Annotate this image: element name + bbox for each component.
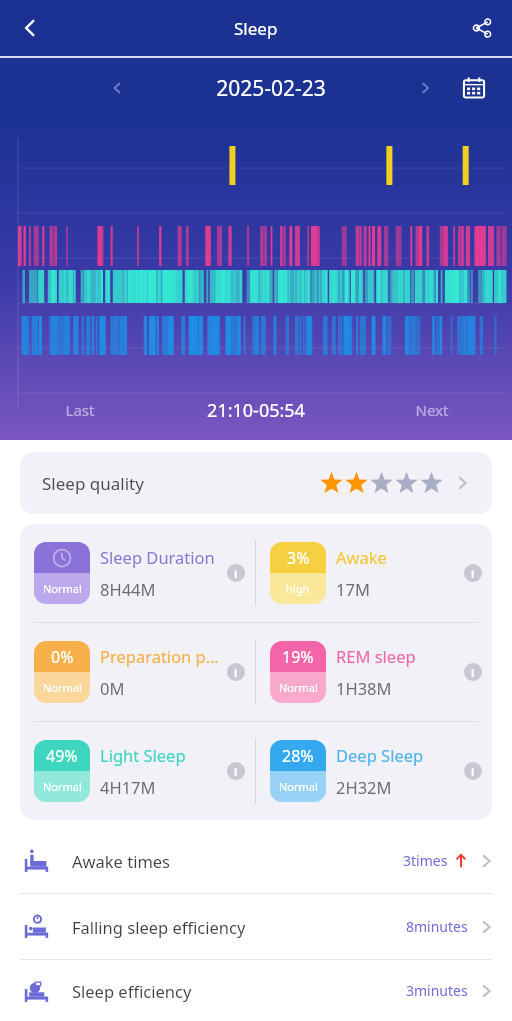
button[interactable]: Sleep quality (20, 452, 492, 514)
staticText: 8minutes (406, 917, 468, 936)
staticText: 17M (336, 578, 370, 600)
staticText: i (234, 566, 238, 581)
button[interactable]: Normal (20, 524, 255, 622)
button[interactable]: Previous day (100, 71, 134, 105)
staticText: 19% (282, 646, 314, 668)
staticText: 2H32M (336, 776, 392, 798)
button[interactable]: 19% (256, 623, 492, 721)
button[interactable]: Back (8, 6, 52, 50)
button[interactable]: Info (227, 762, 245, 780)
staticText: i (471, 764, 475, 779)
button[interactable]: Info (227, 564, 245, 582)
staticText: 8H44M (100, 578, 156, 600)
staticText: Awake (336, 546, 387, 568)
button[interactable]: Sleep efficiency (0, 960, 512, 1021)
staticText: Sleep efficiency (72, 980, 406, 1002)
staticText: Preparation pe… (100, 645, 223, 667)
staticText: 0M (100, 677, 125, 699)
staticText: Sleep quality (42, 472, 319, 495)
staticText: 21:10-05:54 (160, 398, 352, 423)
staticText: 2025-02-23 (134, 74, 408, 103)
staticText: i (234, 665, 238, 680)
button[interactable]: 28% (256, 722, 492, 820)
button[interactable]: 3% (256, 524, 492, 622)
button[interactable]: Falling sleep efficiency (0, 894, 512, 959)
staticText: Normal (43, 680, 82, 695)
button[interactable]: Info (464, 762, 482, 780)
staticText: Sleep Duration (100, 546, 215, 568)
staticText: Normal (279, 680, 318, 695)
staticText: Awake times (72, 850, 403, 872)
staticText: Deep Sleep (336, 744, 424, 766)
staticText: Next (352, 400, 512, 420)
staticText: 4H17M (100, 776, 156, 798)
staticText: 3minutes (406, 981, 468, 1000)
staticText: Normal (279, 779, 318, 794)
button[interactable]: Share (460, 6, 504, 50)
staticText: i (471, 665, 475, 680)
staticText: i (234, 764, 238, 779)
staticText: Last (0, 400, 160, 420)
staticText: 49% (46, 745, 78, 767)
staticText: Normal (43, 581, 82, 596)
staticText: REM sleep (336, 645, 416, 667)
staticText: Light Sleep (100, 744, 186, 766)
button[interactable]: Calendar (454, 68, 494, 108)
staticText: 3times (403, 851, 448, 870)
button[interactable]: Info (464, 564, 482, 582)
staticText: 0% (51, 646, 74, 668)
button[interactable]: Info (464, 663, 482, 681)
button[interactable]: Info (227, 663, 245, 681)
button[interactable]: Next day (408, 71, 442, 105)
staticText: Falling sleep efficiency (72, 916, 406, 938)
staticText: Sleep (234, 17, 278, 40)
button[interactable]: 0% (20, 623, 255, 721)
staticText: 28% (282, 745, 314, 767)
staticText: i (471, 566, 475, 581)
button[interactable]: 49% (20, 722, 255, 820)
staticText: 3% (287, 547, 310, 569)
staticText: 1H38M (336, 677, 392, 699)
button[interactable]: Awake times (0, 828, 512, 893)
staticText: high (286, 581, 310, 596)
staticText: Normal (43, 779, 82, 794)
